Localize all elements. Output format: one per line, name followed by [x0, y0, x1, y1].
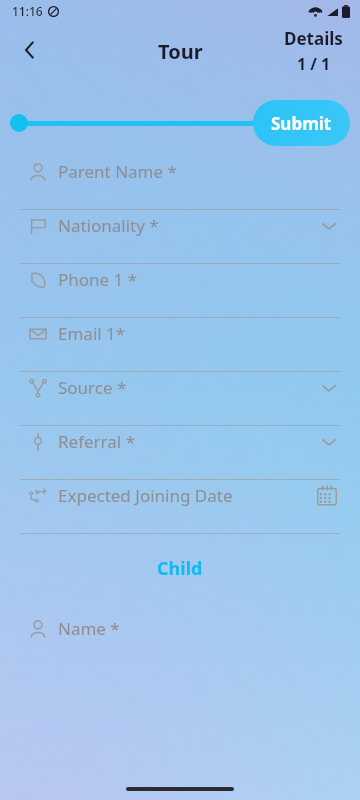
- staticText: Referral *: [58, 430, 320, 453]
- button[interactable]: Expected Joining Date: [0, 484, 360, 538]
- staticText: Email 1*: [58, 322, 338, 345]
- staticText: Source *: [58, 376, 320, 399]
- button[interactable]: Email 1*: [0, 322, 360, 376]
- button[interactable]: Phone 1 *: [0, 268, 360, 322]
- staticText: 1 / 1: [297, 53, 331, 75]
- staticText: Expected Joining Date: [58, 484, 316, 507]
- staticText: Submit: [271, 112, 332, 135]
- button[interactable]: Source *: [0, 376, 360, 430]
- staticText: Phone 1 *: [58, 268, 338, 291]
- button[interactable]: Child: [157, 556, 203, 581]
- staticText: Tour: [158, 38, 203, 65]
- staticText: Parent Name *: [58, 160, 338, 183]
- button[interactable]: Submit: [253, 100, 350, 146]
- button[interactable]: Name *: [0, 617, 360, 666]
- button[interactable]: Back: [8, 28, 52, 72]
- staticText: Details: [284, 27, 343, 50]
- button[interactable]: Referral *: [0, 430, 360, 484]
- staticText: Nationality *: [58, 214, 320, 237]
- button[interactable]: Nationality *: [0, 214, 360, 268]
- staticText: 11:16: [12, 3, 43, 19]
- staticText: Name *: [58, 617, 338, 640]
- button[interactable]: Parent Name *: [0, 160, 360, 214]
